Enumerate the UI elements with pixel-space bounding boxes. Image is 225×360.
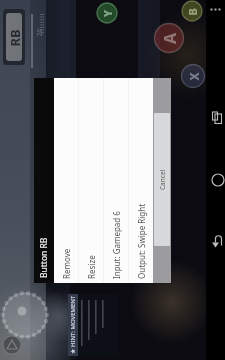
staticText: RB [5,28,22,46]
button[interactable]: Resize [79,78,103,283]
staticText: X [185,71,201,80]
staticText: ★ HINT: MOVEMENT [69,295,77,354]
staticText: Output: Swipe Right [136,203,147,279]
button[interactable]: Output: Swipe Right [129,78,153,283]
staticText: Input: Gamepad 6 [111,211,122,279]
button[interactable]: Cancel [154,113,170,246]
staticText: Resize [86,255,97,279]
button[interactable]: Input: Gamepad 6 [104,78,128,283]
button[interactable]: Recents [210,110,225,126]
staticText: 20 [34,27,43,36]
button[interactable]: More options [208,2,223,17]
staticText: A [159,32,179,44]
staticText: Remove [61,248,72,279]
button[interactable]: Remove [54,78,78,283]
button[interactable]: Home [210,172,225,188]
staticText: Button RB [38,237,50,278]
staticText: Y [100,10,115,17]
staticText: B [184,7,199,15]
button[interactable]: Back [210,233,225,249]
staticText: Cancel [158,169,167,190]
